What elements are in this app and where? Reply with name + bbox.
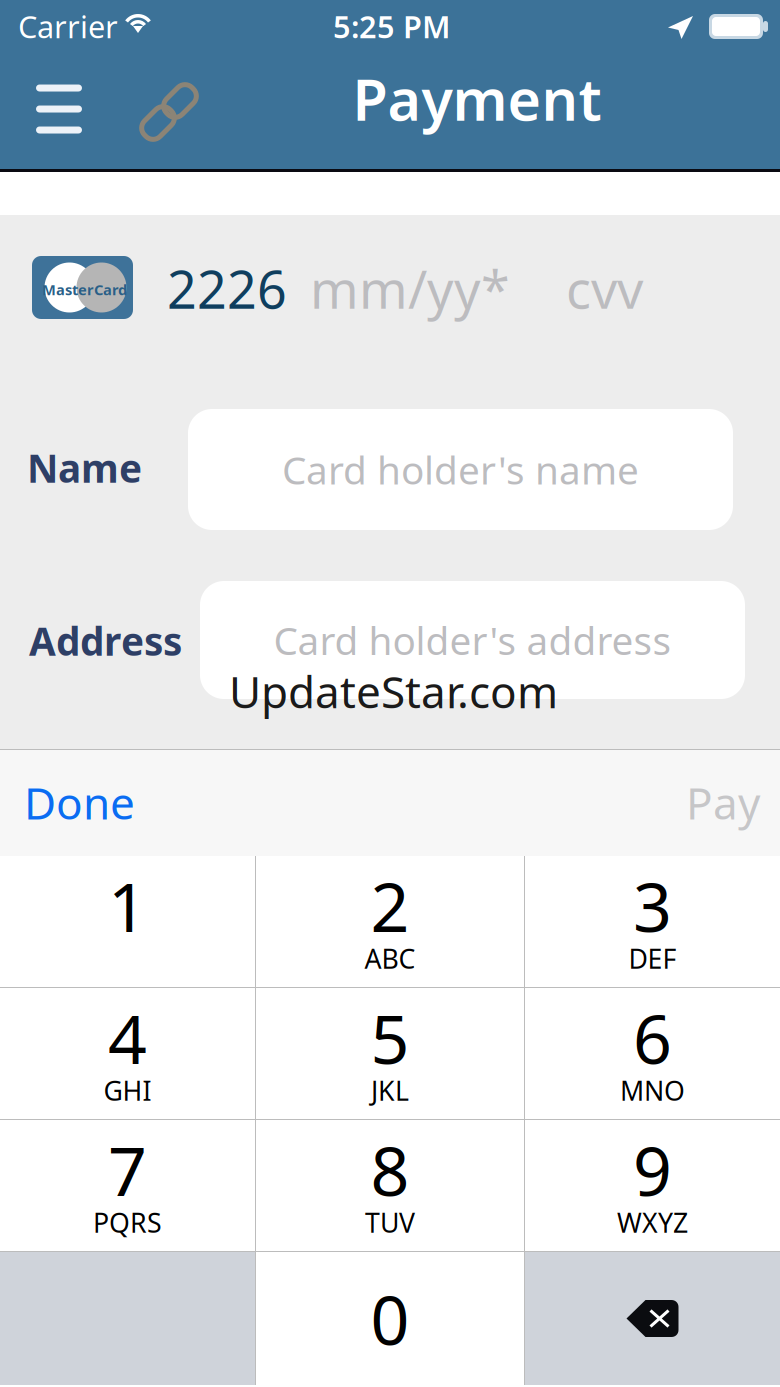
button[interactable]: Pay <box>666 749 780 856</box>
button[interactable]: 9 <box>525 1120 780 1251</box>
button[interactable]: 0 <box>256 1252 524 1385</box>
staticText: 0 <box>370 1273 409 1364</box>
staticText: 2 <box>370 860 409 951</box>
staticText: ABC <box>364 941 415 976</box>
staticText: JKL <box>371 1073 409 1108</box>
button[interactable]: 5 <box>256 988 524 1119</box>
button[interactable]: Done <box>0 749 159 856</box>
staticText: 5 <box>370 992 409 1083</box>
button[interactable]: 8 <box>256 1120 524 1251</box>
staticText: cvv <box>566 254 643 323</box>
button[interactable]: 6 <box>525 988 780 1119</box>
staticText: Payment <box>352 60 601 136</box>
staticText: 5:25 PM <box>333 6 450 47</box>
staticText: Done <box>24 773 135 832</box>
button[interactable]: Link <box>126 67 212 157</box>
staticText: Pay <box>686 773 760 832</box>
staticText: 6 <box>633 992 672 1083</box>
staticText: MNO <box>620 1073 685 1108</box>
button[interactable]: Delete <box>525 1252 780 1385</box>
staticText: Name <box>27 442 142 493</box>
staticText: TUV <box>365 1205 415 1240</box>
staticText: WXYZ <box>617 1205 688 1240</box>
staticText: 3 <box>633 860 672 951</box>
button[interactable]: Card holder's address <box>200 581 745 699</box>
staticText: Carrier <box>18 6 118 47</box>
staticText: 8 <box>370 1124 409 1215</box>
button[interactable]: 4 <box>0 988 255 1119</box>
button[interactable]: 2 <box>256 856 524 987</box>
button[interactable]: Menu <box>15 64 103 154</box>
staticText: Card holder's address <box>273 614 671 666</box>
staticText: GHI <box>103 1073 151 1108</box>
staticText: 7 <box>108 1124 147 1215</box>
staticText: MasterCard <box>42 280 127 299</box>
staticText: mm/yy* <box>310 254 510 323</box>
button[interactable]: 3 <box>525 856 780 987</box>
button[interactable]: Card holder's name <box>188 409 733 530</box>
staticText: Address <box>29 615 182 666</box>
staticText: PQRS <box>93 1205 162 1240</box>
button[interactable]: 1 <box>0 856 255 987</box>
staticText: 2226 <box>167 254 287 323</box>
staticText: Card holder's name <box>282 444 639 495</box>
staticText: UpdateStar.com <box>229 662 558 720</box>
button[interactable]: 7 <box>0 1120 255 1251</box>
staticText: 4 <box>108 992 147 1083</box>
staticText: 9 <box>633 1124 672 1215</box>
staticText: DEF <box>628 941 676 976</box>
staticText: 1 <box>108 860 147 951</box>
